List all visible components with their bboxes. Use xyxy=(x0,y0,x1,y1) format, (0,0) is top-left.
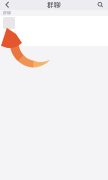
staticText: 群聊 xyxy=(47,1,61,9)
button[interactable]: Group chat xyxy=(3,17,15,29)
button[interactable]: Search xyxy=(96,0,105,9)
button[interactable]: Back xyxy=(3,0,12,9)
staticText: 群聊 xyxy=(3,10,11,15)
